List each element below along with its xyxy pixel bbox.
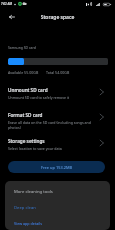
staticText: 7:02 AM bbox=[1, 2, 13, 6]
button[interactable]: Unmount SD card bbox=[0, 86, 115, 104]
staticText: Storage settings bbox=[8, 138, 45, 144]
staticText: Free up 153.2MB bbox=[41, 165, 73, 170]
button[interactable]: Back bbox=[5, 10, 19, 24]
staticText: Erase all data on the SD card (including… bbox=[8, 120, 100, 130]
staticText: Format SD card bbox=[8, 112, 43, 118]
button[interactable]: Format SD card bbox=[0, 111, 115, 133]
button[interactable]: View app details bbox=[14, 221, 43, 226]
staticText: View app details bbox=[14, 221, 43, 226]
button[interactable]: Deep clean bbox=[14, 205, 36, 211]
button[interactable]: Storage settings bbox=[0, 137, 115, 155]
staticText: Storage space bbox=[0, 14, 115, 21]
staticText: Unmount SD card bbox=[8, 87, 48, 93]
staticText: More cleaning tools bbox=[14, 189, 53, 195]
staticText: Unmount SD card to safely remove it bbox=[8, 95, 70, 100]
staticText: Available 55.00GB bbox=[8, 70, 39, 75]
staticText: Select location to save your data bbox=[8, 146, 62, 151]
staticText: Samsung SD card bbox=[8, 45, 36, 50]
button[interactable]: Free up 153.2MB bbox=[8, 161, 105, 173]
staticText: Deep clean bbox=[14, 205, 36, 211]
staticText: Total 54.00GB bbox=[46, 70, 70, 75]
